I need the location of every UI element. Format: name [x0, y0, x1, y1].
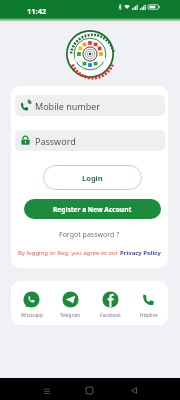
staticText: Helpline	[140, 312, 158, 318]
button[interactable]: Forgot password ?	[57, 228, 122, 242]
staticText: Register a New Account	[53, 205, 132, 214]
staticText: Privacy Policy	[120, 249, 161, 257]
staticText: Password	[35, 135, 76, 147]
staticText: Forgot password ?	[59, 230, 120, 240]
staticText: Mobile number	[35, 100, 101, 112]
staticText: By logging or Reg, you agree to our	[18, 249, 120, 257]
button[interactable]: Facebook	[91, 291, 130, 318]
staticText: 11:42	[27, 6, 47, 16]
button[interactable]: Whatsapp	[12, 291, 51, 318]
button[interactable]: Helpline	[129, 291, 168, 318]
button[interactable]: Login	[43, 165, 142, 190]
button[interactable]: Back	[123, 380, 144, 400]
button[interactable]: Home	[79, 380, 100, 400]
button[interactable]: Recent apps	[36, 380, 57, 400]
staticText: Login	[82, 173, 103, 183]
button[interactable]: Password	[15, 130, 165, 151]
button[interactable]: Register a New Account	[24, 199, 161, 219]
button[interactable]: Mobile number	[15, 95, 165, 116]
staticText: Telegram	[60, 312, 81, 318]
button[interactable]: Telegram	[51, 291, 90, 318]
staticText: Facebook	[100, 312, 121, 318]
staticText: Whatsapp	[21, 312, 43, 318]
button[interactable]: Privacy Policy	[120, 249, 161, 257]
